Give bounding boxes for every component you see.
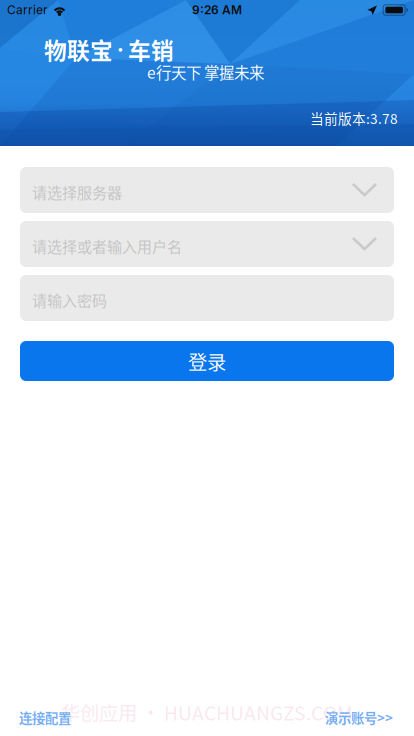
- staticText: 华创应用 · HUACHUANGZS.COM: [61, 698, 353, 726]
- button[interactable]: 请选择或者输入用户名: [20, 221, 394, 267]
- button[interactable]: 请输入密码: [20, 275, 394, 321]
- button[interactable]: 登录: [20, 341, 394, 381]
- staticText: 当前版本:3.78: [310, 108, 398, 128]
- staticText: 物联宝: [44, 33, 113, 66]
- staticText: e行天下 掌握未来: [147, 61, 264, 83]
- staticText: 车销: [128, 33, 174, 66]
- staticText: 连接配置: [19, 708, 71, 727]
- button[interactable]: 演示账号>>: [322, 696, 396, 728]
- staticText: 登录: [188, 347, 226, 375]
- staticText: Carrier: [7, 3, 48, 17]
- staticText: 演示账号>>: [325, 708, 393, 727]
- staticText: 请选择或者输入用户名: [32, 235, 182, 257]
- staticText: ·: [113, 39, 128, 60]
- button[interactable]: 连接配置: [16, 696, 74, 728]
- staticText: 请输入密码: [32, 289, 107, 311]
- button[interactable]: 请选择服务器: [20, 167, 394, 213]
- staticText: 9:26 AM: [192, 3, 242, 17]
- staticText: 请选择服务器: [32, 181, 122, 203]
